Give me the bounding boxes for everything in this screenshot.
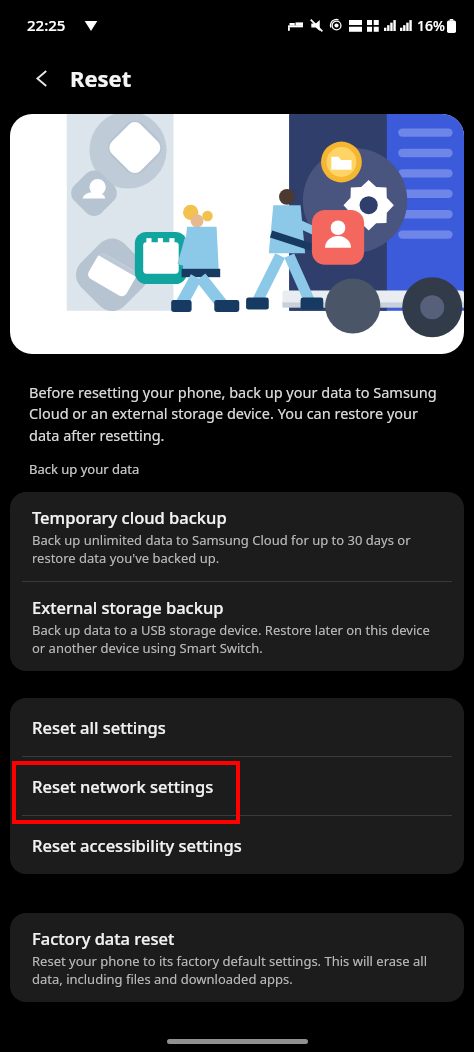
staticText: 22:25	[27, 15, 66, 35]
button[interactable]: Factory data reset	[10, 913, 464, 1002]
staticText: Reset	[70, 63, 132, 93]
staticText: Reset your phone to its factory default …	[32, 952, 444, 988]
button[interactable]: Reset accessibility settings	[10, 816, 464, 874]
staticText: Reset all settings	[32, 716, 166, 738]
staticText: Reset accessibility settings	[32, 834, 242, 856]
staticText: Reset network settings	[32, 775, 214, 797]
staticText: 16%	[417, 16, 445, 35]
staticText: External storage backup	[32, 596, 224, 618]
staticText: Back up unlimited data to Samsung Cloud …	[32, 531, 444, 567]
staticText: Factory data reset	[32, 927, 175, 949]
staticText: Temporary cloud backup	[32, 506, 227, 528]
button[interactable]: Temporary cloud backup	[10, 492, 464, 581]
staticText: Back up your data	[29, 460, 140, 478]
button[interactable]: External storage backup	[10, 582, 464, 671]
staticText: Back up data to a USB storage device. Re…	[32, 621, 444, 657]
button[interactable]: Reset network settings	[10, 757, 464, 815]
button[interactable]: Back	[22, 58, 62, 98]
staticText: Before resetting your phone, back up you…	[29, 382, 445, 446]
button[interactable]: Reset all settings	[10, 698, 464, 756]
